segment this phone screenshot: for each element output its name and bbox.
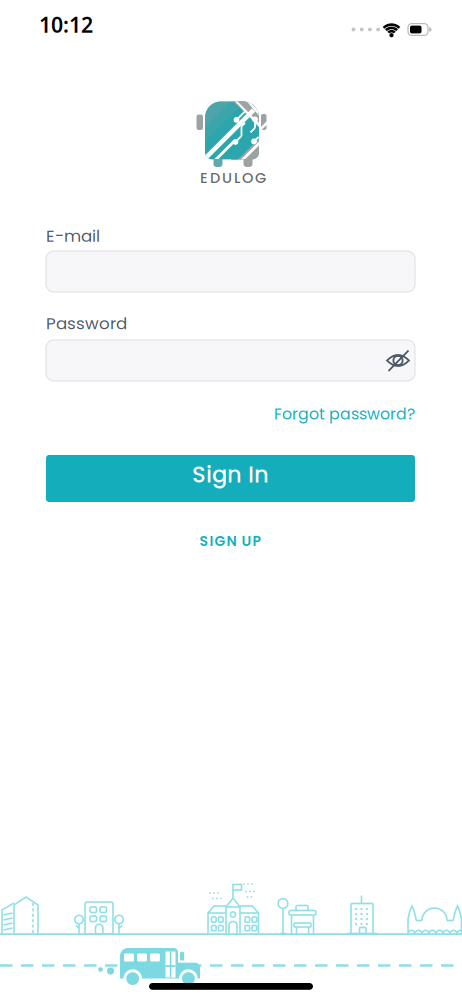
- button[interactable]: [46, 340, 415, 381]
- staticText: U: [222, 168, 232, 188]
- button[interactable]: [383, 345, 413, 375]
- staticText: Sign In: [192, 459, 269, 490]
- staticText: G: [214, 531, 225, 551]
- staticText: S: [199, 531, 208, 551]
- staticText: E-mail: [46, 224, 100, 248]
- button[interactable]: Forgot password?: [274, 403, 415, 425]
- staticText: L: [234, 168, 240, 188]
- staticText: I: [209, 531, 213, 551]
- staticText: P: [252, 531, 261, 551]
- button[interactable]: S: [199, 529, 261, 553]
- staticText: Password: [46, 312, 127, 335]
- staticText: E: [200, 168, 208, 188]
- button[interactable]: Sign In: [46, 455, 415, 502]
- staticText: N: [226, 531, 236, 551]
- staticText: 10:12: [39, 10, 93, 39]
- staticText: O: [242, 168, 253, 188]
- staticText: U: [241, 531, 251, 551]
- staticText: G: [255, 168, 266, 188]
- staticText: D: [210, 168, 220, 188]
- staticText: Forgot password?: [274, 403, 415, 425]
